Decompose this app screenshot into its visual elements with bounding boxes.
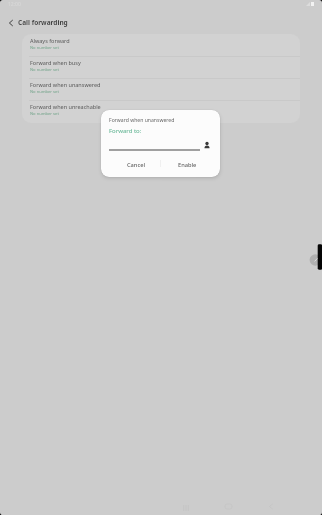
staticText: Call forwarding (18, 18, 68, 27)
button[interactable]: Always forward (22, 34, 300, 56)
button[interactable]: Navigate up (2, 14, 20, 32)
staticText: Always forward (30, 37, 70, 44)
staticText: Forward when unanswered (109, 117, 175, 124)
staticText: Forward when unanswered (30, 81, 101, 88)
button[interactable]: Enable (175, 159, 199, 170)
button[interactable]: Forward when unreachable (22, 100, 300, 122)
button[interactable]: Choose contact (204, 142, 210, 149)
staticText: No number set (30, 111, 59, 117)
staticText: Forward when busy (30, 59, 81, 66)
staticText: Cancel (127, 161, 146, 169)
staticText: No number set (30, 45, 59, 51)
button[interactable]: Forward when busy (22, 56, 300, 78)
staticText: 12:00 (8, 1, 21, 8)
button[interactable]: Forward when unanswered (22, 78, 300, 100)
button[interactable]: Edge panel (308, 243, 322, 271)
button[interactable]: Cancel (124, 159, 148, 170)
staticText: No number set (30, 67, 59, 73)
staticText: Forward when unreachable (30, 103, 101, 110)
staticText: Enable (178, 161, 197, 169)
staticText: No number set (30, 89, 59, 95)
staticText: Forward to: (109, 127, 142, 135)
